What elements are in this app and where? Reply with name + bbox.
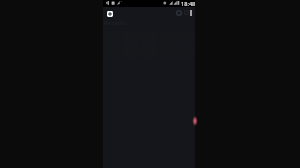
button[interactable]: Notifications — [181, 7, 191, 17]
button[interactable]: App icon — [107, 11, 113, 17]
button[interactable]: Record — [190, 112, 200, 130]
staticText: 18:48 — [181, 0, 196, 7]
button[interactable]: More options — [187, 9, 195, 17]
button[interactable]: Search — [173, 7, 184, 18]
